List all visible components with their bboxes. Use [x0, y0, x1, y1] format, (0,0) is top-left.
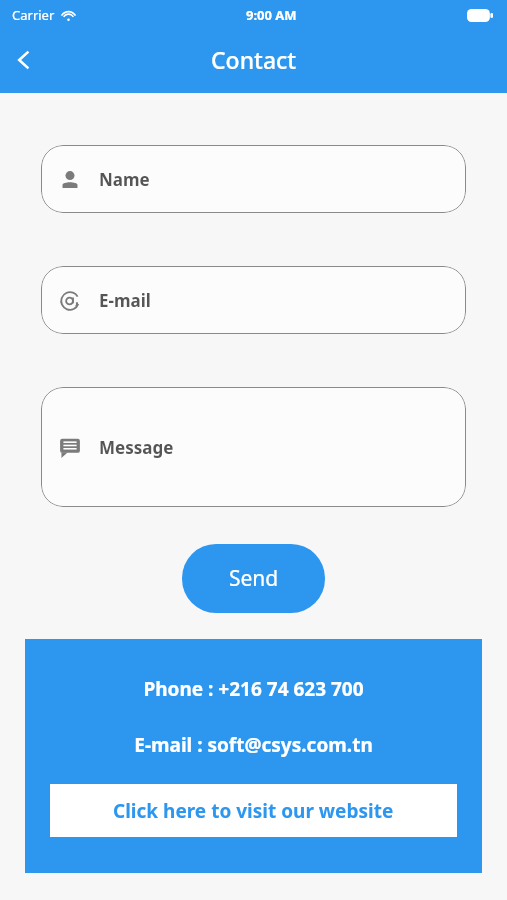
button[interactable]: Name	[41, 145, 466, 213]
button[interactable]: Back	[0, 36, 48, 84]
button[interactable]: Message	[41, 387, 466, 507]
staticText: E-mail	[99, 289, 151, 312]
staticText: Phone : +216 74 623 700	[143, 676, 364, 702]
staticText: Carrier	[12, 6, 55, 24]
button[interactable]: E-mail	[41, 266, 466, 334]
staticText: Contact	[211, 44, 297, 75]
staticText: Click here to visit our website	[113, 798, 394, 824]
staticText: Name	[99, 168, 150, 191]
staticText: 9:00 AM	[246, 6, 297, 24]
staticText: Send	[229, 564, 279, 593]
staticText: Message	[99, 436, 174, 459]
button[interactable]: Click here to visit our website	[50, 784, 457, 837]
button[interactable]: Send	[182, 544, 325, 613]
staticText: E-mail : soft@csys.com.tn	[134, 732, 373, 758]
